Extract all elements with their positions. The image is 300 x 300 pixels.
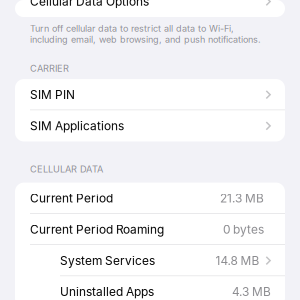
button[interactable]: SIM Applications [15, 110, 285, 141]
button[interactable]: Current Period Roaming [15, 214, 285, 245]
staticText: Current Period Roaming [30, 222, 164, 237]
staticText: Cellular Data Options [30, 0, 149, 9]
staticText: SIM PIN [30, 87, 75, 102]
staticText: Uninstalled Apps [60, 285, 154, 299]
staticText: CARRIER [30, 63, 69, 74]
staticText: 4.3 MB [232, 285, 271, 299]
staticText: 21.3 MB [220, 191, 264, 205]
button[interactable]: System Services [15, 245, 285, 276]
staticText: Turn off cellular data to restrict all d… [30, 23, 234, 34]
staticText: 14.8 MB [215, 253, 259, 268]
staticText: System Services [60, 253, 155, 268]
staticText: CELLULAR DATA [30, 163, 103, 175]
button[interactable]: Uninstalled Apps [15, 276, 285, 300]
button[interactable]: Current Period [15, 183, 285, 214]
staticText: including email, web browsing, and push … [30, 34, 261, 45]
button[interactable]: Cellular Data Options [15, 0, 285, 17]
staticText: 0 bytes [223, 222, 264, 237]
button[interactable]: SIM PIN [15, 79, 285, 110]
staticText: Current Period [30, 191, 113, 205]
staticText: SIM Applications [30, 119, 124, 133]
